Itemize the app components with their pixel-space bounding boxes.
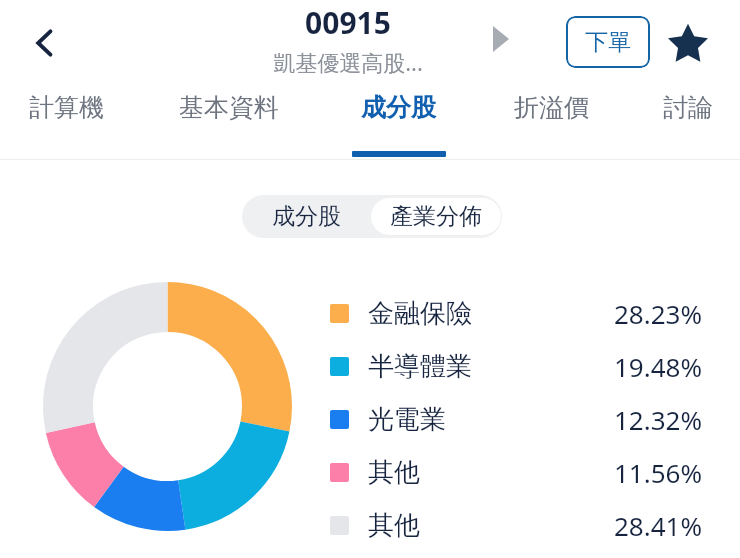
button[interactable]: 其他 bbox=[330, 502, 702, 548]
button[interactable]: 光電業 bbox=[330, 396, 702, 442]
button[interactable]: 折溢價 bbox=[494, 92, 609, 160]
staticText: 28.41% bbox=[613, 508, 702, 543]
button[interactable]: 其他 bbox=[330, 449, 702, 495]
button[interactable]: 產業分佈 bbox=[371, 198, 501, 235]
staticText: 金融保險 bbox=[368, 297, 472, 330]
staticText: 成分股 bbox=[361, 92, 436, 123]
button[interactable]: 半導體業 bbox=[330, 343, 702, 389]
button[interactable]: More bbox=[478, 16, 524, 62]
staticText: 計算機 bbox=[29, 92, 104, 123]
staticText: 成分股 bbox=[272, 202, 341, 231]
button[interactable]: 計算機 bbox=[9, 92, 124, 160]
button[interactable]: 00915 bbox=[168, 2, 528, 77]
button[interactable]: Favorite bbox=[660, 16, 716, 72]
staticText: 19.48% bbox=[613, 349, 702, 384]
button[interactable]: 討論 bbox=[647, 92, 729, 160]
staticText: 28.23% bbox=[613, 296, 702, 331]
staticText: 光電業 bbox=[368, 403, 446, 436]
button[interactable]: 成分股 bbox=[242, 195, 370, 238]
staticText: 12.32% bbox=[613, 402, 702, 437]
button[interactable]: 金融保險 bbox=[330, 290, 702, 336]
staticText: 下單 bbox=[585, 28, 631, 57]
staticText: 討論 bbox=[663, 92, 713, 123]
staticText: 基本資料 bbox=[179, 92, 279, 123]
staticText: 11.56% bbox=[613, 455, 702, 490]
staticText: 凱基優選高股... bbox=[273, 47, 423, 77]
staticText: 00915 bbox=[305, 2, 391, 43]
staticText: 其他 bbox=[368, 456, 420, 489]
staticText: 半導體業 bbox=[368, 350, 472, 383]
button[interactable]: 成分股 bbox=[341, 92, 456, 160]
staticText: 折溢價 bbox=[514, 92, 589, 123]
staticText: 其他 bbox=[368, 509, 420, 542]
button[interactable]: 下單 bbox=[566, 16, 650, 68]
button[interactable]: 基本資料 bbox=[155, 92, 303, 160]
button[interactable]: Back bbox=[10, 8, 80, 78]
staticText: 產業分佈 bbox=[390, 202, 482, 231]
